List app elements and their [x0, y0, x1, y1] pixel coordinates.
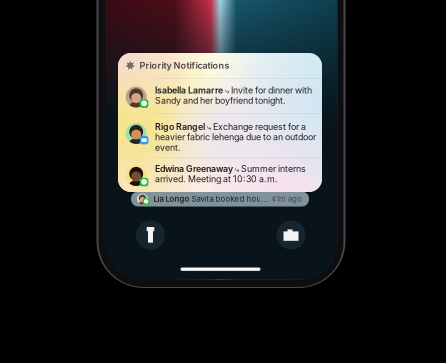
button[interactable]: Lia Longo Savita booked house…	[131, 191, 309, 206]
staticText: Lia Longo Savita booked house…	[153, 194, 271, 203]
staticText: Isabella Lamarre ⤷ Invite for dinner wit…	[155, 85, 312, 106]
button[interactable]: Flashlight	[132, 217, 168, 253]
button[interactable]: Isabella Lamarre ⤷ Invite for dinner wit…	[126, 85, 322, 107]
button[interactable]: Rigo Rangel ⤷ Exchange request for a hea…	[126, 121, 322, 153]
button[interactable]: Camera	[273, 217, 309, 253]
staticText: Priority Notifications	[139, 60, 229, 71]
staticText: Rigo Rangel ⤷ Exchange request for a hea…	[155, 121, 316, 153]
staticText: Edwina Greenaway ⤷ Summer interns arrive…	[155, 163, 306, 184]
staticText: 41m ago	[271, 194, 302, 204]
button[interactable]: Edwina Greenaway ⤷ Summer interns arrive…	[126, 163, 322, 186]
